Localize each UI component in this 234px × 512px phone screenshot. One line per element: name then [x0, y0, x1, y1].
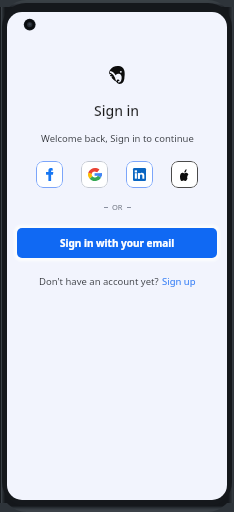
button[interactable]: Sign in with Google	[81, 161, 108, 188]
button[interactable]: Sign in with LinkedIn	[126, 161, 153, 188]
staticText: OR	[112, 202, 123, 212]
staticText: Sign in with your email	[60, 236, 175, 250]
staticText: Sign in	[94, 101, 140, 120]
staticText: Sign up	[162, 275, 196, 288]
staticText: Don't have an account yet?	[39, 275, 162, 288]
button[interactable]: Sign in with Apple	[171, 161, 198, 188]
button[interactable]: Sign in with your email	[17, 228, 217, 258]
staticText: Welcome back, Sign in to continue	[41, 132, 194, 145]
button[interactable]: Sign in with Facebook	[36, 161, 63, 188]
button[interactable]: Sign up	[162, 275, 196, 288]
